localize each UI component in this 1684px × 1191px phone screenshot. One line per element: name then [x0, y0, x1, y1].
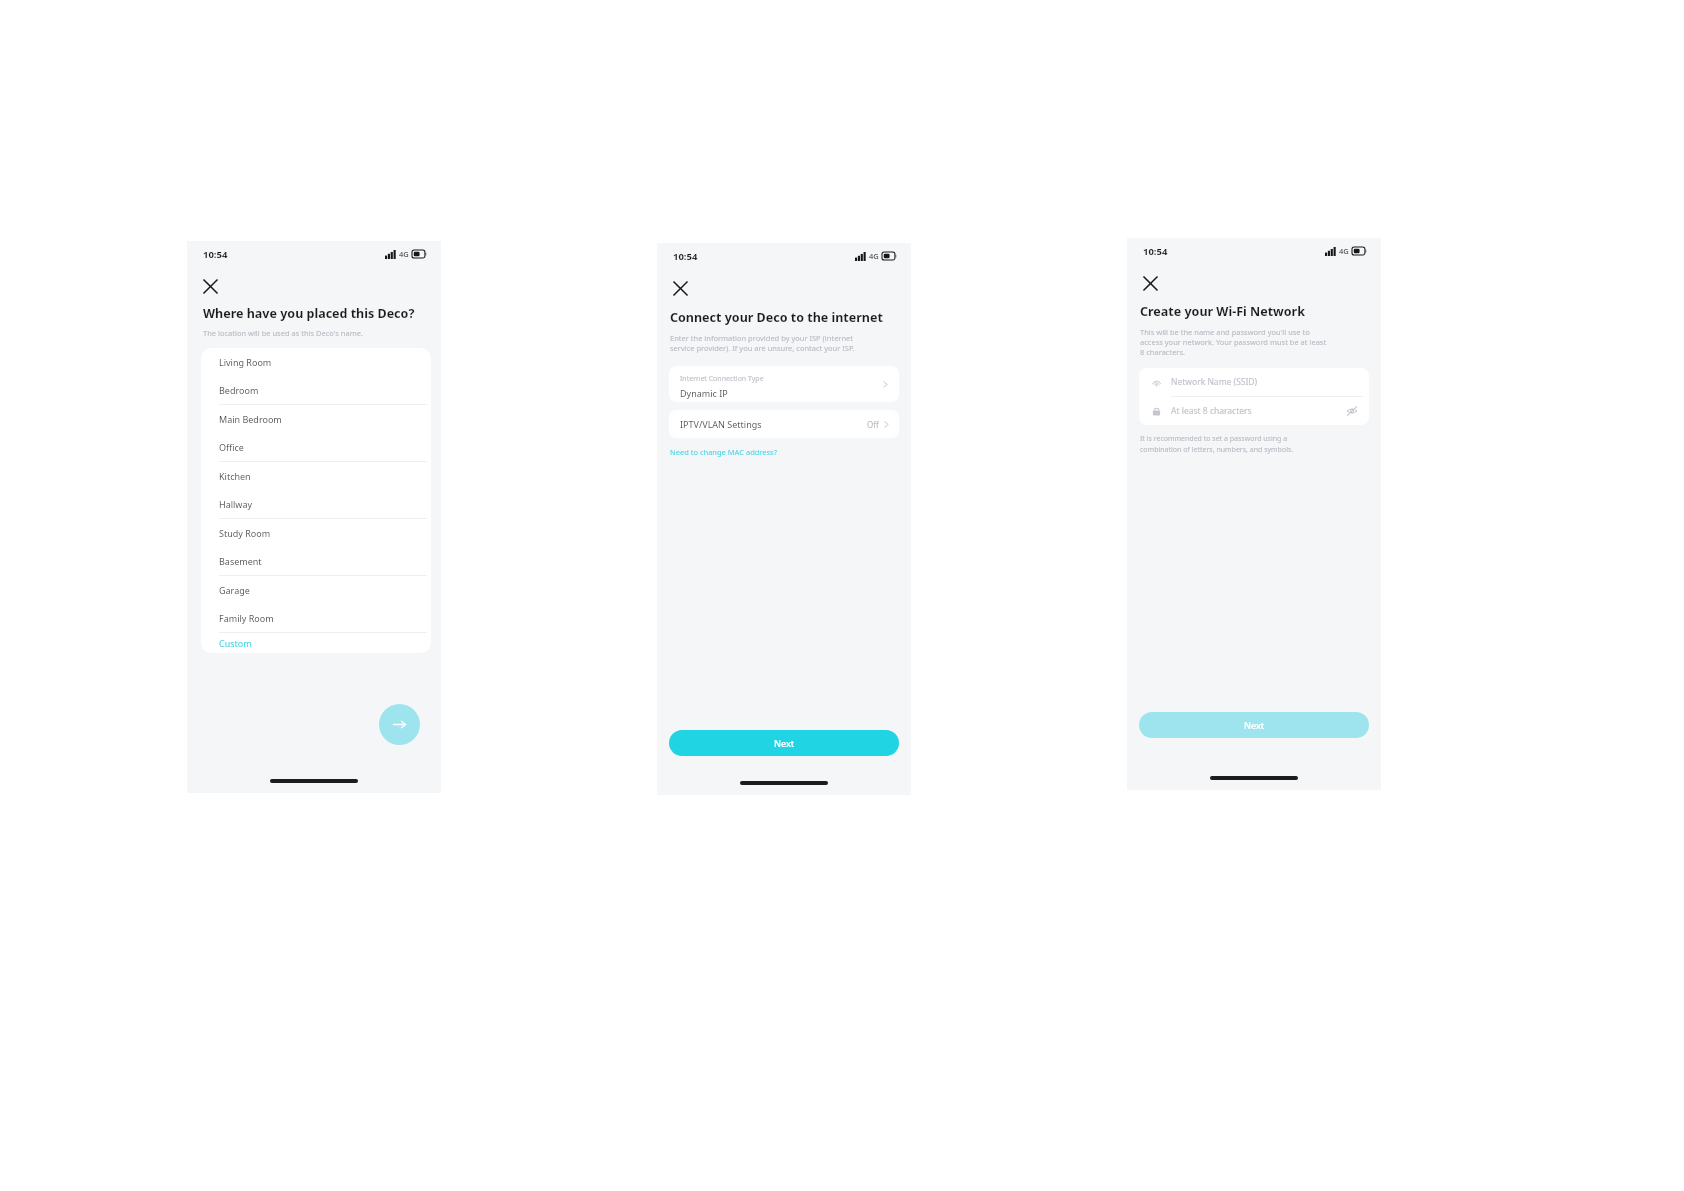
button[interactable]: Internet Connection Type — [669, 366, 899, 402]
staticText: Off — [867, 419, 879, 430]
staticText: Need to change MAC address? — [670, 447, 777, 457]
staticText: Create your Wi-Fi Network — [1140, 303, 1305, 320]
button[interactable]: Close — [195, 271, 225, 301]
staticText: Internet Connection Type — [680, 374, 764, 384]
staticText: Study Room — [219, 527, 271, 539]
button[interactable]: Study Room — [201, 519, 431, 547]
staticText: IPTV/VLAN Settings — [680, 418, 762, 430]
staticText: Living Room — [219, 356, 272, 368]
staticText: Family Room — [219, 612, 274, 624]
staticText: 4G — [869, 251, 879, 261]
button[interactable]: Office — [201, 433, 431, 461]
staticText: Custom — [219, 637, 252, 649]
button[interactable]: Need to change MAC address? — [670, 447, 777, 457]
button[interactable]: Hallway — [201, 490, 431, 518]
staticText: 10:54 — [1143, 245, 1168, 258]
button[interactable]: At least 8 characters — [1139, 397, 1369, 425]
staticText: Connect your Deco to the internet — [670, 309, 883, 326]
button[interactable]: Next — [379, 704, 420, 745]
button[interactable]: Bedroom — [201, 376, 431, 404]
button[interactable]: Network Name (SSID) — [1139, 368, 1369, 396]
button[interactable]: Garage — [201, 576, 431, 604]
button[interactable]: Show password — [1343, 402, 1361, 420]
staticText: Dynamic IP — [680, 387, 728, 399]
button[interactable]: IPTV/VLAN Settings — [669, 410, 899, 438]
staticText: 10:54 — [673, 250, 698, 263]
staticText: Basement — [219, 555, 262, 567]
staticText: 4G — [399, 249, 409, 259]
button[interactable]: Close — [1135, 268, 1165, 298]
button[interactable]: Next — [669, 730, 899, 756]
button[interactable]: Kitchen — [201, 462, 431, 490]
staticText: Network Name (SSID) — [1171, 376, 1258, 388]
button[interactable]: Next — [1139, 712, 1369, 738]
button[interactable]: Close — [665, 273, 695, 303]
staticText: Hallway — [219, 498, 253, 510]
button[interactable]: Living Room — [201, 348, 431, 376]
staticText: Next — [1244, 719, 1265, 731]
staticText: It is recommended to set a password usin… — [1140, 434, 1294, 454]
button[interactable]: Main Bedroom — [201, 405, 431, 433]
staticText: Garage — [219, 584, 250, 596]
button[interactable]: Basement — [201, 547, 431, 575]
staticText: At least 8 characters — [1171, 405, 1252, 417]
staticText: 4G — [1339, 246, 1349, 256]
button[interactable]: Custom — [201, 633, 431, 653]
staticText: This will be the name and password you'l… — [1140, 327, 1327, 357]
staticText: 10:54 — [203, 248, 228, 261]
staticText: Enter the information provided by your I… — [670, 333, 855, 353]
staticText: Next — [774, 737, 795, 749]
button[interactable]: Family Room — [201, 604, 431, 632]
staticText: The location will be used as this Deco's… — [203, 328, 363, 338]
staticText: Office — [219, 441, 244, 453]
staticText: Kitchen — [219, 470, 251, 482]
staticText: Where have you placed this Deco? — [203, 305, 415, 322]
staticText: Main Bedroom — [219, 413, 282, 425]
staticText: Bedroom — [219, 384, 259, 396]
